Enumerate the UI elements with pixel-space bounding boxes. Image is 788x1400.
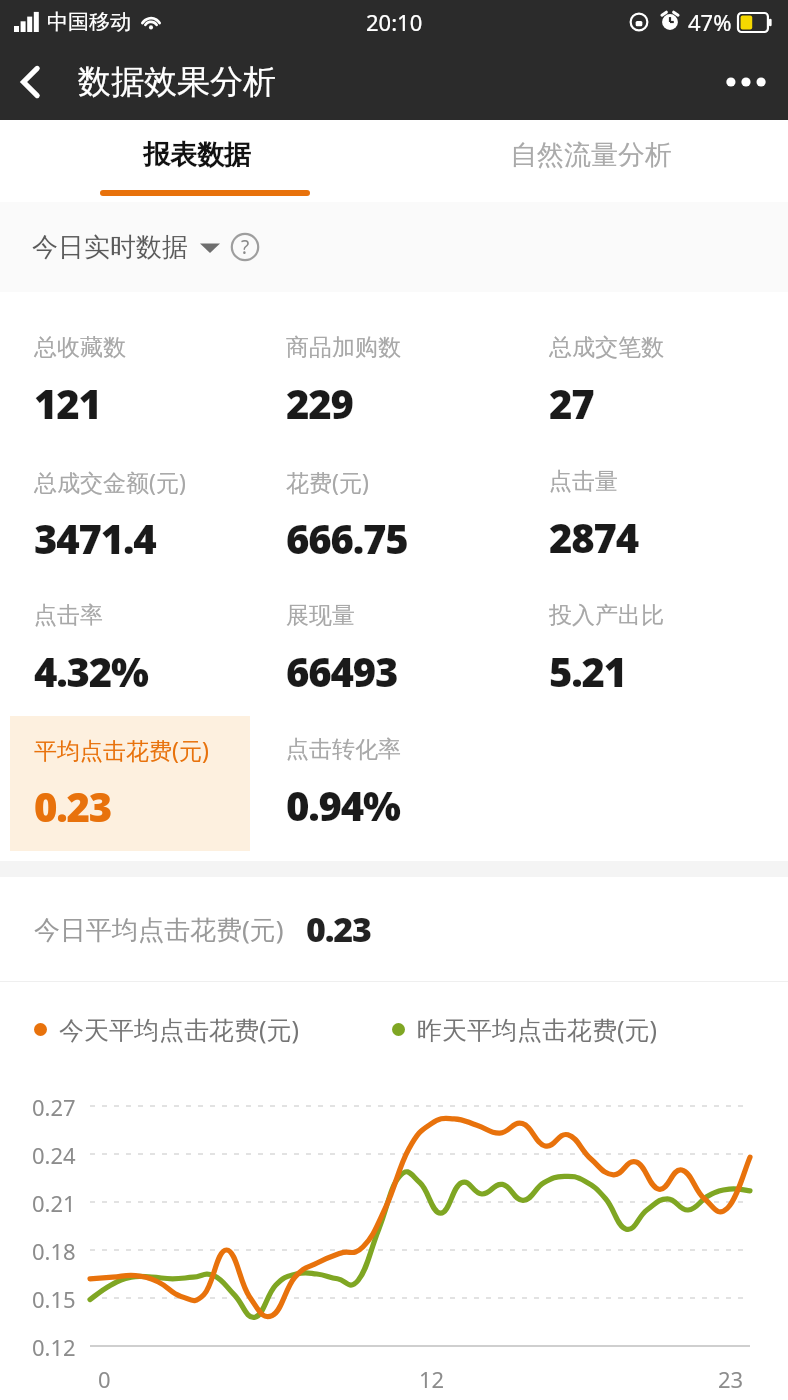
staticText: 47% xyxy=(688,7,732,37)
staticText: 0.18 xyxy=(32,1236,76,1266)
staticText: ? xyxy=(241,234,250,260)
staticText: 商品加购数 xyxy=(286,333,401,362)
staticText: 报表数据 xyxy=(143,138,251,172)
staticText: 总成交笔数 xyxy=(549,333,664,362)
button[interactable]: 今日实时数据 xyxy=(32,231,220,264)
button[interactable]: Help xyxy=(222,224,268,270)
button[interactable]: 自然流量分析 xyxy=(394,120,788,202)
staticText: 0 xyxy=(98,1364,111,1394)
staticText: 总收藏数 xyxy=(34,333,126,362)
staticText: 229 xyxy=(286,376,353,430)
button[interactable]: Back xyxy=(0,51,62,113)
staticText: 2874 xyxy=(549,510,638,564)
staticText: 昨天平均点击花费(元) xyxy=(417,1012,658,1046)
button[interactable]: 昨天平均点击花费(元) xyxy=(392,1012,658,1046)
button[interactable]: 点击率 xyxy=(10,582,250,716)
staticText: 666.75 xyxy=(286,511,408,565)
staticText: 0.12 xyxy=(32,1332,76,1362)
staticText: 0.94% xyxy=(286,778,400,832)
staticText: 平均点击花费(元) xyxy=(34,734,209,765)
staticText: 展现量 xyxy=(286,601,355,630)
staticText: 0.21 xyxy=(32,1188,76,1218)
button[interactable]: 商品加购数 xyxy=(262,314,513,448)
button[interactable]: 点击量 xyxy=(525,448,776,582)
button[interactable]: 总成交笔数 xyxy=(525,314,776,448)
staticText: 66493 xyxy=(286,644,398,698)
staticText: 5.21 xyxy=(549,644,627,698)
staticText: 自然流量分析 xyxy=(510,138,672,172)
staticText: 0.24 xyxy=(32,1140,76,1170)
button[interactable]: 报表数据 xyxy=(0,120,394,202)
button[interactable]: 平均点击花费(元) xyxy=(10,716,250,851)
button[interactable]: 点击转化率 xyxy=(262,716,513,851)
staticText: 中国移动 xyxy=(47,9,131,35)
staticText: 0.23 xyxy=(34,779,112,833)
button[interactable]: 花费(元) xyxy=(262,448,513,582)
staticText: 121 xyxy=(34,376,101,430)
staticText: 总成交金额(元) xyxy=(34,466,186,497)
staticText: 0.27 xyxy=(32,1092,76,1122)
staticText: 0.23 xyxy=(306,906,371,952)
staticText: 点击率 xyxy=(34,601,103,630)
button[interactable]: 投入产出比 xyxy=(525,582,776,716)
staticText: 12 xyxy=(419,1364,445,1394)
button[interactable]: 总成交金额(元) xyxy=(10,448,250,582)
staticText: 4.32% xyxy=(34,644,148,698)
staticText: 0.15 xyxy=(32,1284,76,1314)
staticText: 20:10 xyxy=(366,7,423,37)
staticText: 点击量 xyxy=(549,467,618,496)
button[interactable]: 展现量 xyxy=(262,582,513,716)
button[interactable]: More options xyxy=(718,58,774,106)
button[interactable]: 今天平均点击花费(元) xyxy=(34,1012,300,1046)
staticText: 投入产出比 xyxy=(549,601,664,630)
staticText: 今日实时数据 xyxy=(32,231,188,264)
staticText: 今天平均点击花费(元) xyxy=(59,1012,300,1046)
staticText: 花费(元) xyxy=(286,466,369,497)
staticText: 点击转化率 xyxy=(286,735,401,764)
staticText: 27 xyxy=(549,376,594,430)
staticText: 数据效果分析 xyxy=(78,61,276,103)
staticText: 今日平均点击花费(元) xyxy=(34,911,284,947)
button[interactable]: 总收藏数 xyxy=(10,314,250,448)
staticText: 23 xyxy=(718,1364,744,1394)
staticText: 3471.4 xyxy=(34,511,156,565)
